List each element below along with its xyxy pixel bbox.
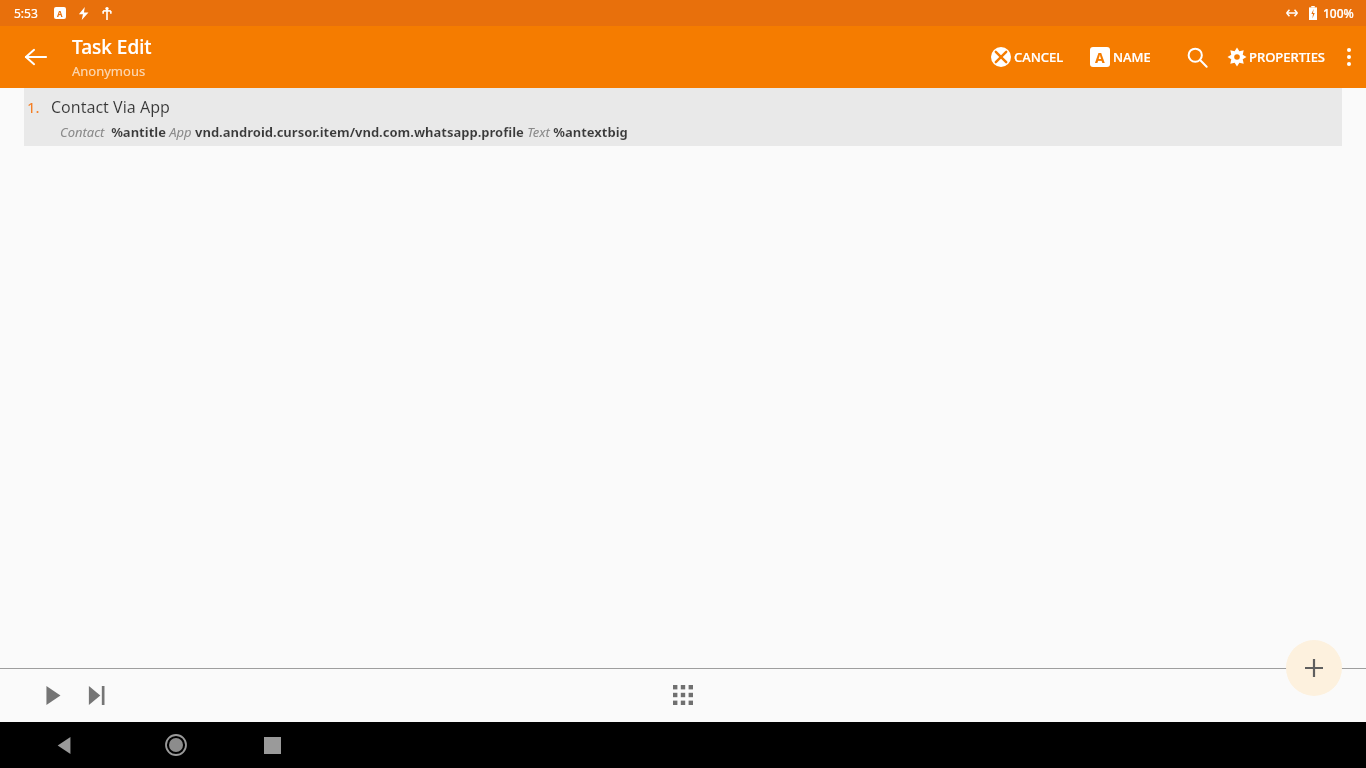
staticText: 1. [27,97,40,117]
staticText: Anonymous [72,62,146,80]
button[interactable]: PROPERTIES [1221,26,1332,88]
staticText: Contact %antitle App vnd.android.cursor.… [60,123,628,141]
button[interactable]: Back [0,722,128,768]
staticText: 5:53 [14,5,38,21]
staticText: CANCEL [1014,48,1064,66]
button[interactable]: More options [1332,26,1366,88]
button[interactable]: 1. [24,88,1342,146]
button[interactable]: Recents [224,722,320,768]
button[interactable]: Play [30,673,74,717]
button[interactable]: A [1082,26,1159,88]
staticText: NAME [1113,48,1151,66]
button[interactable]: CANCEL [983,26,1072,88]
staticText: A [57,8,63,19]
button[interactable]: Home [128,722,224,768]
button[interactable]: Grid [659,671,707,719]
staticText: Contact Via App [51,96,170,118]
button[interactable]: Back [0,26,72,88]
button[interactable]: Add action [1286,640,1342,696]
button[interactable]: Step forward [74,673,118,717]
staticText: PROPERTIES [1249,48,1326,66]
staticText: 100% [1323,5,1354,21]
button[interactable]: Search [1173,33,1221,81]
staticText: A [1095,48,1105,67]
staticText: Task Edit [72,34,152,60]
